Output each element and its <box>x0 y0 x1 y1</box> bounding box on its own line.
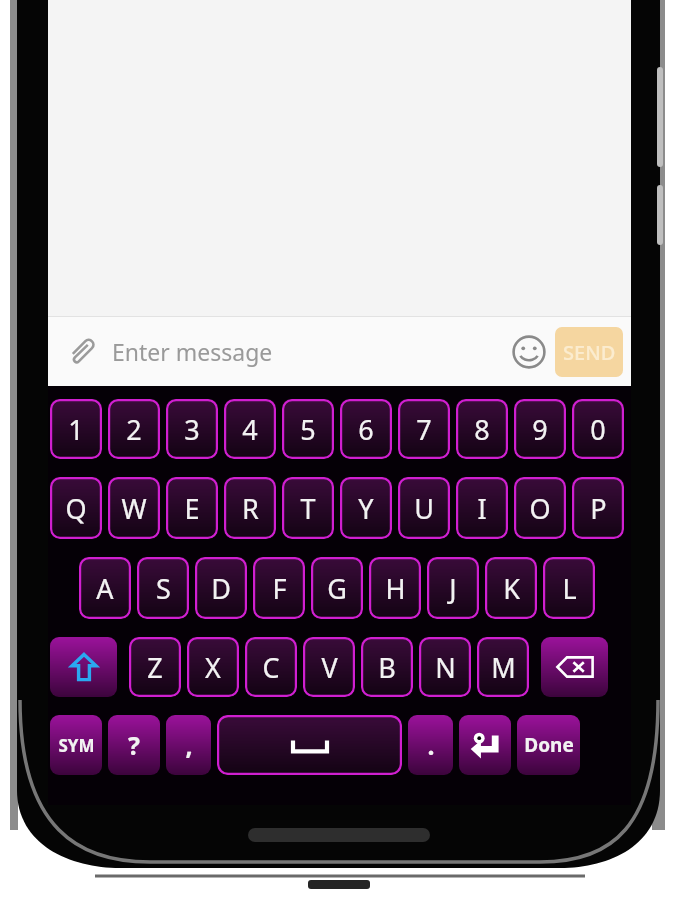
staticText: 8 <box>474 411 490 448</box>
button[interactable]: I <box>456 477 508 539</box>
button[interactable]: U <box>398 477 450 539</box>
button[interactable]: M <box>477 637 529 697</box>
staticText: C <box>262 649 280 686</box>
button[interactable]: F <box>253 557 305 619</box>
staticText: A <box>96 570 114 607</box>
button[interactable]: C <box>245 637 297 697</box>
button[interactable]: G <box>311 557 363 619</box>
button[interactable]: Settings / Enter <box>459 715 511 775</box>
staticText: 2 <box>126 411 142 448</box>
staticText: F <box>272 570 287 607</box>
button[interactable]: X <box>187 637 239 697</box>
button[interactable]: , <box>166 715 211 775</box>
staticText: Done <box>524 732 574 758</box>
button[interactable]: O <box>514 477 566 539</box>
button[interactable]: 9 <box>514 399 566 459</box>
button[interactable]: Done <box>517 715 580 775</box>
staticText: D <box>211 570 231 607</box>
button[interactable]: 5 <box>282 399 334 459</box>
staticText: R <box>242 490 259 527</box>
staticText: SEND <box>563 339 616 366</box>
staticText: H <box>385 570 406 607</box>
button[interactable]: Space <box>217 715 402 775</box>
button[interactable]: E <box>166 477 218 539</box>
staticText: Z <box>147 649 163 686</box>
button[interactable]: 0 <box>572 399 624 459</box>
staticText: 1 <box>68 411 84 448</box>
staticText: N <box>435 649 456 686</box>
button[interactable]: 3 <box>166 399 218 459</box>
button[interactable]: Q <box>50 477 102 539</box>
button[interactable]: 6 <box>340 399 392 459</box>
button[interactable]: Emoji <box>505 328 553 376</box>
button[interactable]: P <box>572 477 624 539</box>
button[interactable]: Attach <box>60 329 106 375</box>
staticText: T <box>300 490 316 527</box>
button[interactable]: 1 <box>50 399 102 459</box>
button[interactable]: Enter message <box>112 336 505 367</box>
staticText: U <box>414 490 434 527</box>
staticText: ? <box>128 728 140 762</box>
button[interactable]: N <box>419 637 471 697</box>
staticText: O <box>529 490 551 527</box>
button[interactable]: V <box>303 637 355 697</box>
button[interactable]: 4 <box>224 399 276 459</box>
staticText: 6 <box>358 411 374 448</box>
button[interactable]: L <box>543 557 595 619</box>
button[interactable]: A <box>79 557 131 619</box>
staticText: 4 <box>242 411 258 448</box>
button[interactable]: W <box>108 477 160 539</box>
button[interactable]: H <box>369 557 421 619</box>
button[interactable]: SEND <box>555 327 623 377</box>
button[interactable]: Shift <box>50 637 117 697</box>
staticText: , <box>185 728 193 762</box>
staticText: Enter message <box>112 336 273 367</box>
staticText: E <box>184 490 200 527</box>
button[interactable]: 8 <box>456 399 508 459</box>
staticText: M <box>491 649 516 686</box>
button[interactable]: T <box>282 477 334 539</box>
staticText: Q <box>65 490 87 527</box>
button[interactable]: S <box>137 557 189 619</box>
staticText: Y <box>358 490 374 527</box>
button[interactable]: R <box>224 477 276 539</box>
staticText: K <box>503 570 520 607</box>
staticText: X <box>205 649 221 686</box>
staticText: P <box>590 490 607 527</box>
button[interactable]: Z <box>129 637 181 697</box>
staticText: 7 <box>416 411 432 448</box>
staticText: I <box>477 490 487 527</box>
staticText: 3 <box>184 411 200 448</box>
staticText: 5 <box>300 411 316 448</box>
button[interactable]: 7 <box>398 399 450 459</box>
staticText: J <box>449 570 457 607</box>
staticText: . <box>427 728 435 762</box>
staticText: SYM <box>58 734 95 757</box>
staticText: 9 <box>532 411 548 448</box>
button[interactable]: . <box>408 715 453 775</box>
staticText: W <box>121 490 147 527</box>
button[interactable]: ? <box>108 715 160 775</box>
button[interactable]: D <box>195 557 247 619</box>
staticText: G <box>327 570 347 607</box>
button[interactable]: J <box>427 557 479 619</box>
button[interactable]: 2 <box>108 399 160 459</box>
button[interactable]: K <box>485 557 537 619</box>
button[interactable]: SYM <box>50 715 102 775</box>
button[interactable]: B <box>361 637 413 697</box>
staticText: V <box>321 649 338 686</box>
button[interactable]: Y <box>340 477 392 539</box>
button[interactable]: Backspace <box>541 637 608 697</box>
staticText: S <box>156 570 171 607</box>
staticText: B <box>378 649 396 686</box>
staticText: L <box>562 570 577 607</box>
staticText: 0 <box>590 411 606 448</box>
